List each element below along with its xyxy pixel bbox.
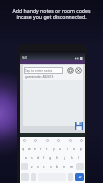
staticText: m	[70, 164, 74, 169]
staticText: g	[49, 155, 52, 160]
button[interactable]: y	[50, 143, 57, 153]
button[interactable]: w	[26, 143, 32, 153]
button[interactable]: s	[29, 153, 35, 162]
staticText: j	[64, 155, 65, 160]
staticText: v	[50, 164, 52, 169]
staticText: b	[56, 164, 59, 169]
button[interactable]: Save	[75, 122, 83, 130]
staticText: x	[37, 164, 39, 169]
button[interactable]: q	[20, 143, 26, 153]
button[interactable]: b	[54, 162, 61, 171]
button[interactable]: u	[57, 143, 64, 153]
staticText: Tap to enter notes	[25, 69, 53, 73]
button[interactable]: r	[38, 143, 44, 153]
button[interactable]: Shift	[21, 163, 28, 170]
button[interactable]: o	[71, 143, 78, 153]
button[interactable]: a	[23, 153, 29, 162]
staticText: c	[43, 164, 45, 169]
button[interactable]: v	[47, 162, 54, 171]
button[interactable]: Keyboard tool 1	[22, 138, 26, 142]
button[interactable]: Refresh code	[67, 67, 74, 74]
button[interactable]: g	[47, 153, 54, 162]
staticText: p	[80, 146, 83, 151]
staticText: w	[28, 146, 31, 151]
staticText: t	[46, 146, 48, 151]
button[interactable]: e	[32, 143, 38, 153]
staticText: q	[22, 146, 25, 151]
staticText: n	[63, 164, 66, 169]
staticText: k	[71, 155, 73, 160]
button[interactable]: Backspace	[76, 163, 84, 170]
button[interactable]: Tap to enter notes	[24, 67, 63, 74]
button[interactable]: h	[54, 153, 61, 162]
staticText: gamecode: 482613	[25, 75, 54, 79]
staticText: h	[56, 155, 59, 160]
button[interactable]: l	[75, 153, 82, 162]
button[interactable]: Symbols	[21, 173, 29, 181]
staticText: s	[31, 155, 33, 160]
button[interactable]: Clear	[75, 67, 82, 74]
button[interactable]: i	[64, 143, 71, 153]
button[interactable]: p	[78, 143, 85, 153]
staticText: e	[34, 146, 36, 151]
button[interactable]: Enter	[75, 173, 84, 181]
button[interactable]: Period	[68, 173, 73, 181]
button[interactable]: m	[68, 162, 75, 171]
button[interactable]: f	[41, 153, 47, 162]
staticText: d	[37, 155, 40, 160]
button[interactable]: Keyboard tool 4	[56, 138, 60, 142]
button[interactable]: Keyboard tool 2	[33, 138, 37, 142]
staticText: o	[73, 146, 76, 151]
button[interactable]: d	[35, 153, 41, 162]
button[interactable]: x	[35, 162, 41, 171]
staticText: a	[25, 155, 27, 160]
button[interactable]: Keyboard tool 3	[45, 138, 49, 142]
button[interactable]: Keyboard tool 5	[68, 138, 72, 142]
button[interactable]: Keyboard tool 6	[79, 138, 83, 142]
staticText: r	[40, 146, 42, 151]
button[interactable]: Comma	[31, 173, 36, 181]
button[interactable]: n	[61, 162, 68, 171]
staticText: l	[78, 155, 79, 160]
button[interactable]: c	[41, 162, 47, 171]
button[interactable]: k	[68, 153, 75, 162]
button[interactable]: z	[29, 162, 35, 171]
staticText: 9:41	[22, 56, 28, 60]
staticText: y	[53, 146, 55, 151]
staticText: i	[67, 146, 68, 151]
staticText: u	[59, 146, 62, 151]
button[interactable]: j	[61, 153, 68, 162]
staticText: Add handy notes or room codes incase you…	[0, 7, 103, 21]
staticText: f	[43, 155, 45, 160]
staticText: z	[31, 164, 33, 169]
button[interactable]: t	[44, 143, 50, 153]
